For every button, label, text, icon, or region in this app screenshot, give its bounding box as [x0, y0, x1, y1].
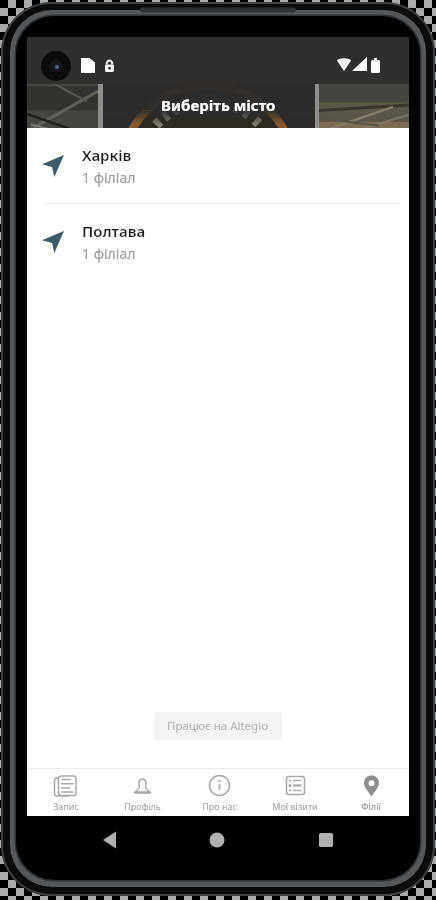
staticText: Працює на Altegio — [167, 718, 269, 734]
button[interactable]: Філії — [333, 769, 409, 816]
staticText: Запис — [53, 800, 79, 812]
staticText: Харків — [82, 145, 132, 165]
staticText: Філії — [361, 800, 381, 812]
button[interactable]: Полтава — [27, 204, 409, 279]
button[interactable]: Про нас — [181, 769, 257, 816]
button[interactable]: Мої візити — [257, 769, 333, 816]
staticText: Виберіть місто — [161, 95, 276, 115]
staticText: Мої візити — [272, 800, 318, 812]
staticText: Профіль — [124, 800, 161, 812]
staticText: 1 філіал — [82, 244, 136, 263]
button[interactable]: Працює на Altegio — [154, 712, 282, 740]
staticText: Полтава — [82, 221, 146, 241]
button[interactable]: Профіль — [104, 769, 181, 816]
button[interactable]: Харків — [27, 128, 409, 203]
staticText: Про нас — [202, 800, 237, 812]
button[interactable]: Запис — [27, 769, 104, 816]
staticText: 1 філіал — [82, 168, 136, 187]
